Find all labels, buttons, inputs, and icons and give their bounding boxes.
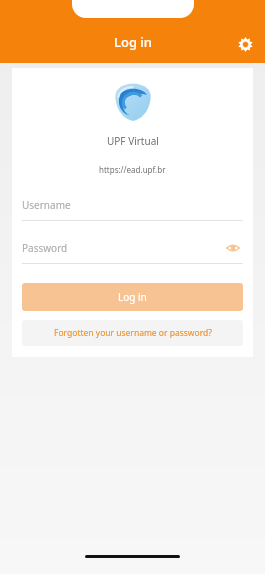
button[interactable]: Settings (231, 30, 259, 58)
staticText: Log in (114, 33, 152, 51)
button[interactable]: Forgotten your username or password? (22, 320, 243, 346)
staticText: https://ead.upf.br (99, 164, 166, 175)
button[interactable]: Show password (223, 238, 243, 258)
staticText: Username (22, 198, 243, 212)
staticText: Password (22, 241, 223, 255)
staticText: Log in (118, 290, 147, 304)
button[interactable]: Password (22, 237, 243, 259)
staticText: Forgotten your username or password? (54, 327, 212, 339)
staticText: UPF Virtual (107, 134, 159, 148)
button[interactable]: Username (22, 194, 243, 216)
button[interactable]: Log in (22, 283, 243, 311)
